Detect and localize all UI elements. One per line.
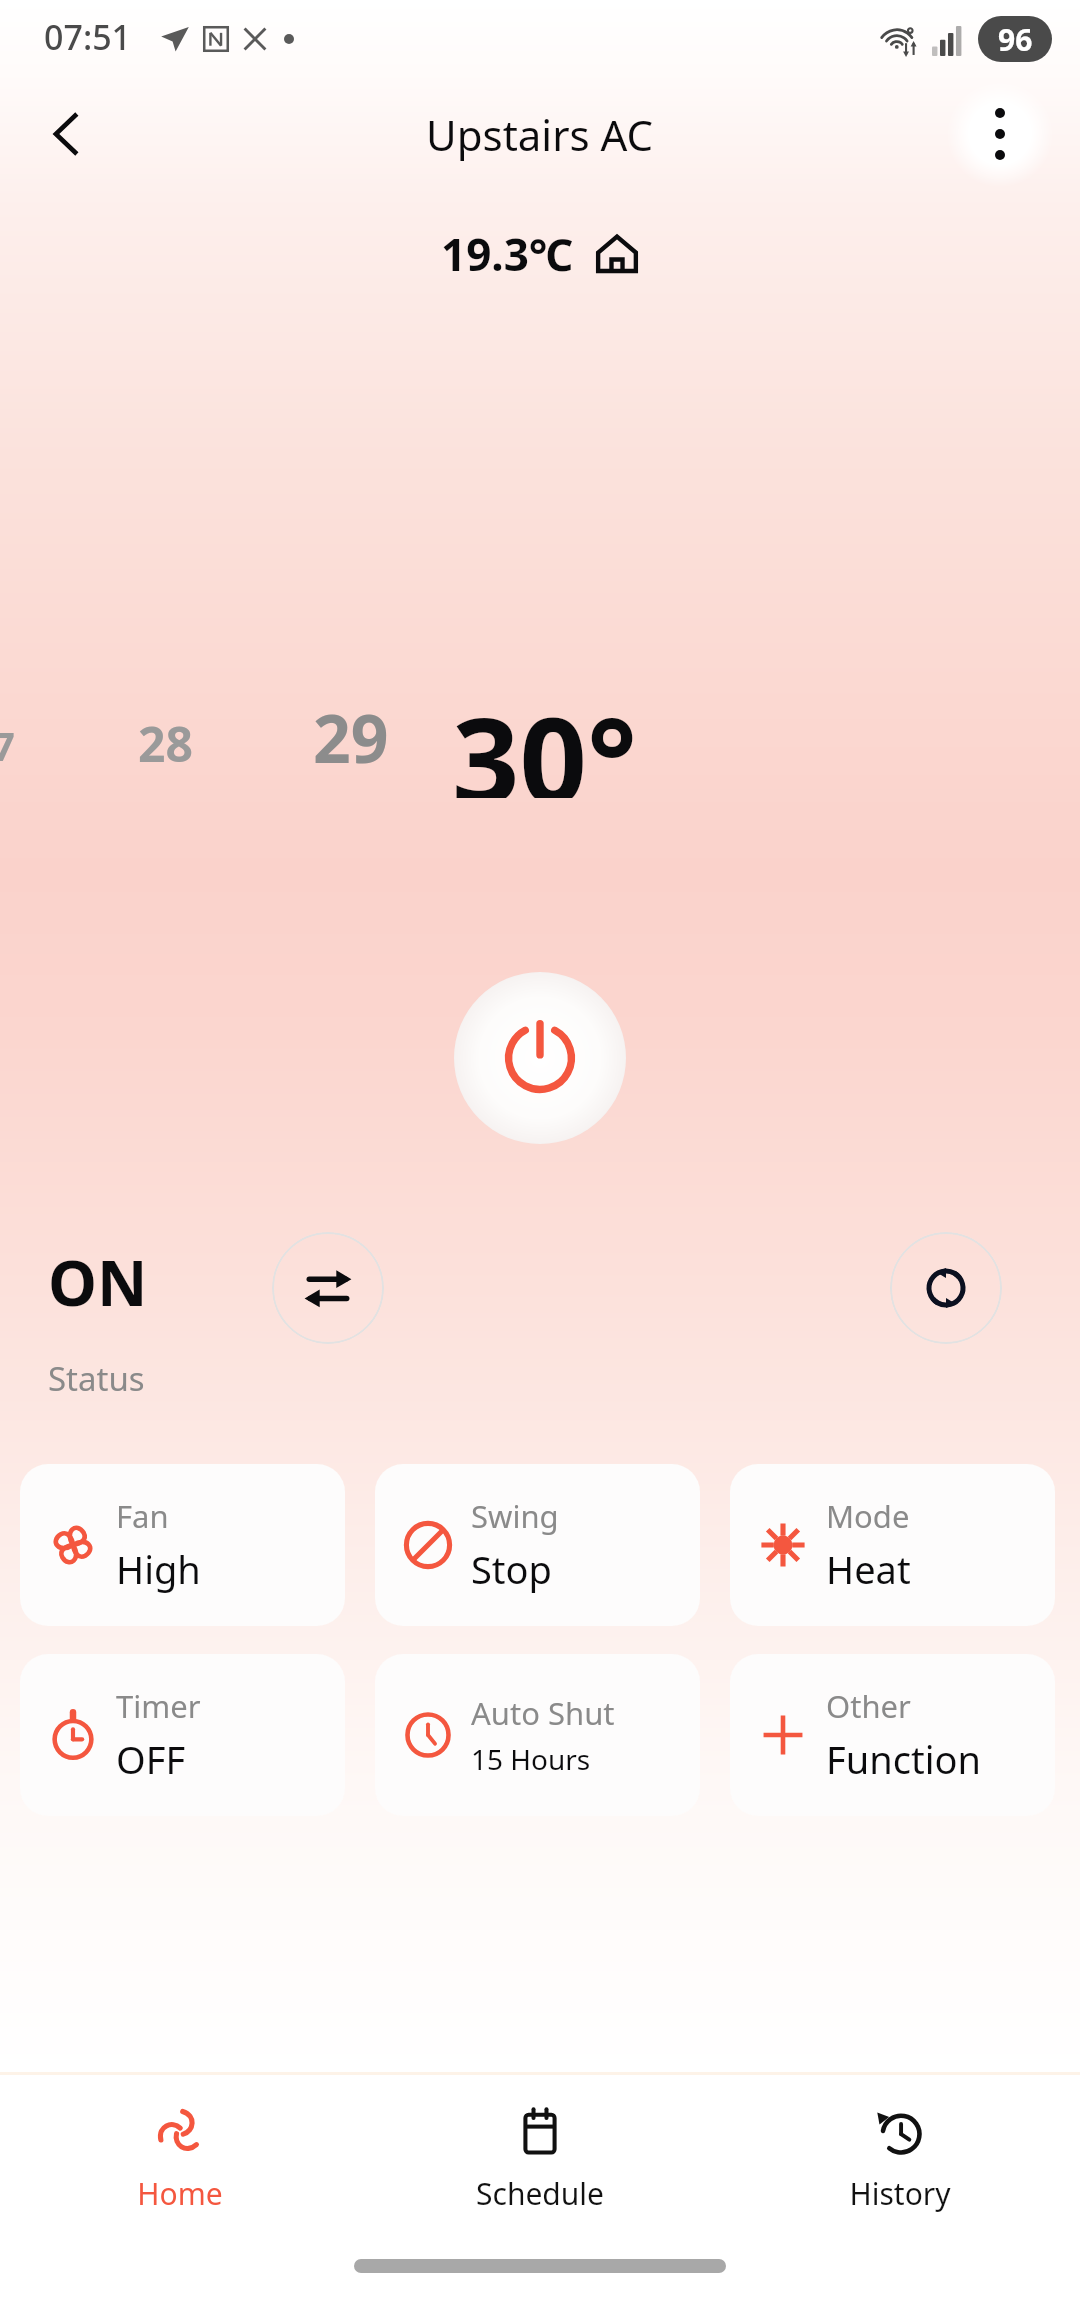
button[interactable]: Timer — [20, 1654, 345, 1816]
staticText: Timer — [116, 1685, 201, 1727]
staticText: 7 — [0, 718, 15, 772]
staticText: 96 — [998, 19, 1033, 60]
staticText: High — [116, 1543, 201, 1595]
button[interactable]: History — [720, 2097, 1080, 2222]
button[interactable]: Home — [0, 2097, 360, 2222]
staticText: Other — [826, 1685, 911, 1727]
button[interactable]: Swap units — [272, 1232, 384, 1344]
staticText: Swing — [471, 1495, 559, 1537]
staticText: 19.3℃ — [441, 224, 574, 284]
staticText: 29 — [313, 692, 389, 782]
button[interactable]: Refresh — [890, 1232, 1002, 1344]
staticText: 15 Hours — [471, 1740, 591, 1778]
button[interactable]: More options — [946, 80, 1054, 188]
staticText: Upstairs AC — [426, 106, 654, 163]
staticText: Fan — [116, 1495, 169, 1537]
button[interactable]: Schedule — [360, 2097, 720, 2222]
staticText: Function — [826, 1733, 981, 1785]
button[interactable]: Other — [730, 1654, 1055, 1816]
staticText: Mode — [826, 1495, 910, 1537]
staticText: 30° — [452, 678, 638, 798]
staticText: OFF — [116, 1733, 186, 1785]
button[interactable]: Back — [26, 94, 106, 174]
button[interactable]: Mode — [730, 1464, 1055, 1626]
button[interactable]: Swing — [375, 1464, 700, 1626]
button[interactable]: Fan — [20, 1464, 345, 1626]
staticText: Auto Shut — [471, 1692, 615, 1734]
button[interactable]: Power — [454, 972, 626, 1144]
button[interactable]: Auto Shut — [375, 1654, 700, 1816]
staticText: Home — [137, 2173, 223, 2214]
staticText: Status — [48, 1356, 145, 1401]
staticText: ON — [48, 1240, 148, 1324]
staticText: 07:51 — [44, 14, 132, 60]
staticText: Schedule — [476, 2173, 604, 2214]
staticText: 28 — [138, 711, 193, 776]
staticText: History — [849, 2173, 951, 2214]
staticText: Stop — [471, 1543, 552, 1595]
staticText: Heat — [826, 1543, 911, 1595]
